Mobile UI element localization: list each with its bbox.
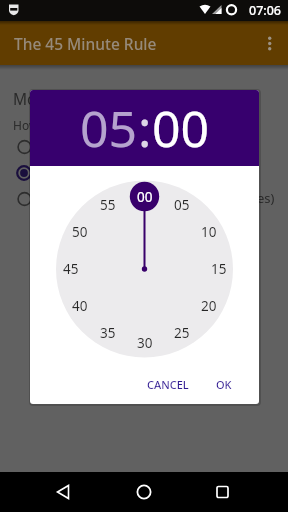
staticText: CANCEL [147, 377, 189, 392]
button[interactable]: CANCEL [139, 373, 197, 396]
staticText: : [138, 94, 152, 162]
staticText: 40 [72, 297, 88, 315]
staticText: 05 [80, 94, 138, 162]
button[interactable] [16, 164, 34, 182]
staticText: 30 [137, 334, 153, 352]
staticText: OK [216, 377, 232, 392]
staticText: 10 [201, 223, 217, 241]
button[interactable] [16, 190, 34, 208]
button[interactable] [254, 22, 288, 65]
staticText: es) [257, 189, 275, 207]
staticText: 35 [100, 324, 116, 342]
staticText: 55 [100, 196, 116, 214]
staticText: How long before reminders [13, 117, 168, 133]
staticText: 25 [174, 324, 190, 342]
staticText: 20 [201, 297, 217, 315]
staticText: 00 [152, 94, 210, 162]
staticText: 05 [174, 196, 190, 214]
staticText: 00 [137, 188, 153, 206]
button[interactable] [0, 472, 96, 512]
button[interactable]: OK [208, 373, 240, 396]
staticText: 50 [72, 223, 88, 241]
staticText: Mode [13, 88, 55, 109]
button[interactable] [96, 472, 192, 512]
staticText: 15 [211, 260, 227, 278]
button[interactable] [192, 472, 288, 512]
staticText: 45 [63, 260, 79, 278]
staticText: The 45 Minute Rule [14, 33, 157, 54]
staticText: 07:06 [249, 2, 282, 19]
button[interactable] [16, 138, 34, 156]
